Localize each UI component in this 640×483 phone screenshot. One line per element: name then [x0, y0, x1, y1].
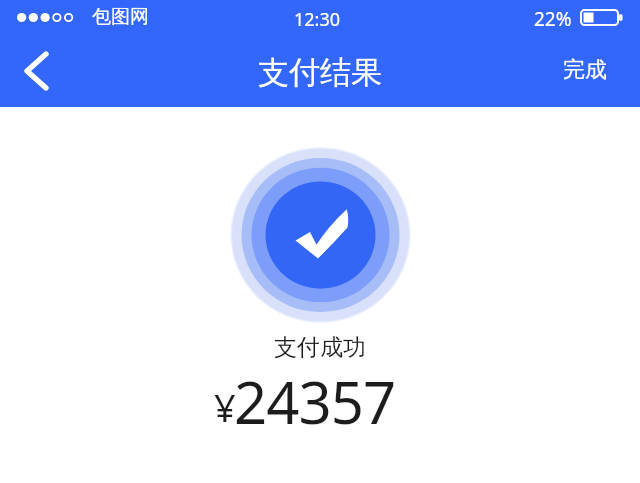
staticText: 支付成功: [0, 333, 640, 362]
button[interactable]: Back: [12, 45, 62, 97]
staticText: 支付结果: [0, 53, 640, 92]
staticText: 包图网: [92, 5, 149, 29]
button[interactable]: 完成: [549, 48, 621, 92]
staticText: ¥: [214, 381, 236, 433]
staticText: 24357: [234, 362, 396, 441]
staticText: 12:30: [0, 7, 637, 32]
other: Payment successful: [229, 147, 412, 323]
staticText: 22%: [534, 6, 572, 32]
staticText: 完成: [563, 56, 607, 84]
